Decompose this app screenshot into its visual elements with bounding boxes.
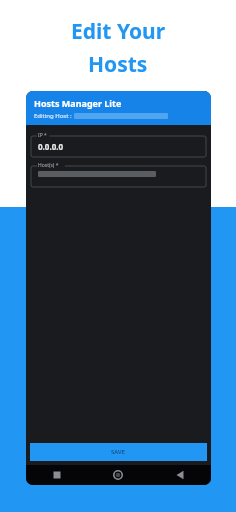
- staticText: Hosts: [88, 50, 148, 79]
- staticText: 0.0.0.0: [38, 141, 64, 152]
- button[interactable]: Home: [87, 465, 149, 485]
- staticText: Host(s) *: [38, 162, 59, 169]
- staticText: SAVE: [111, 448, 126, 456]
- staticText: Edit Your: [71, 17, 166, 46]
- button[interactable]: Recents: [26, 465, 87, 485]
- button[interactable]: Back: [149, 465, 211, 485]
- staticText: Editing Host :: [34, 112, 74, 120]
- button[interactable]: Hosts Manager Lite: [26, 91, 211, 125]
- staticText: IP *: [38, 132, 47, 139]
- staticText: Hosts Manager Lite: [34, 97, 122, 109]
- button[interactable]: IP *: [31, 132, 206, 157]
- button[interactable]: SAVE: [30, 443, 207, 461]
- button[interactable]: Host(s) *: [31, 162, 206, 187]
